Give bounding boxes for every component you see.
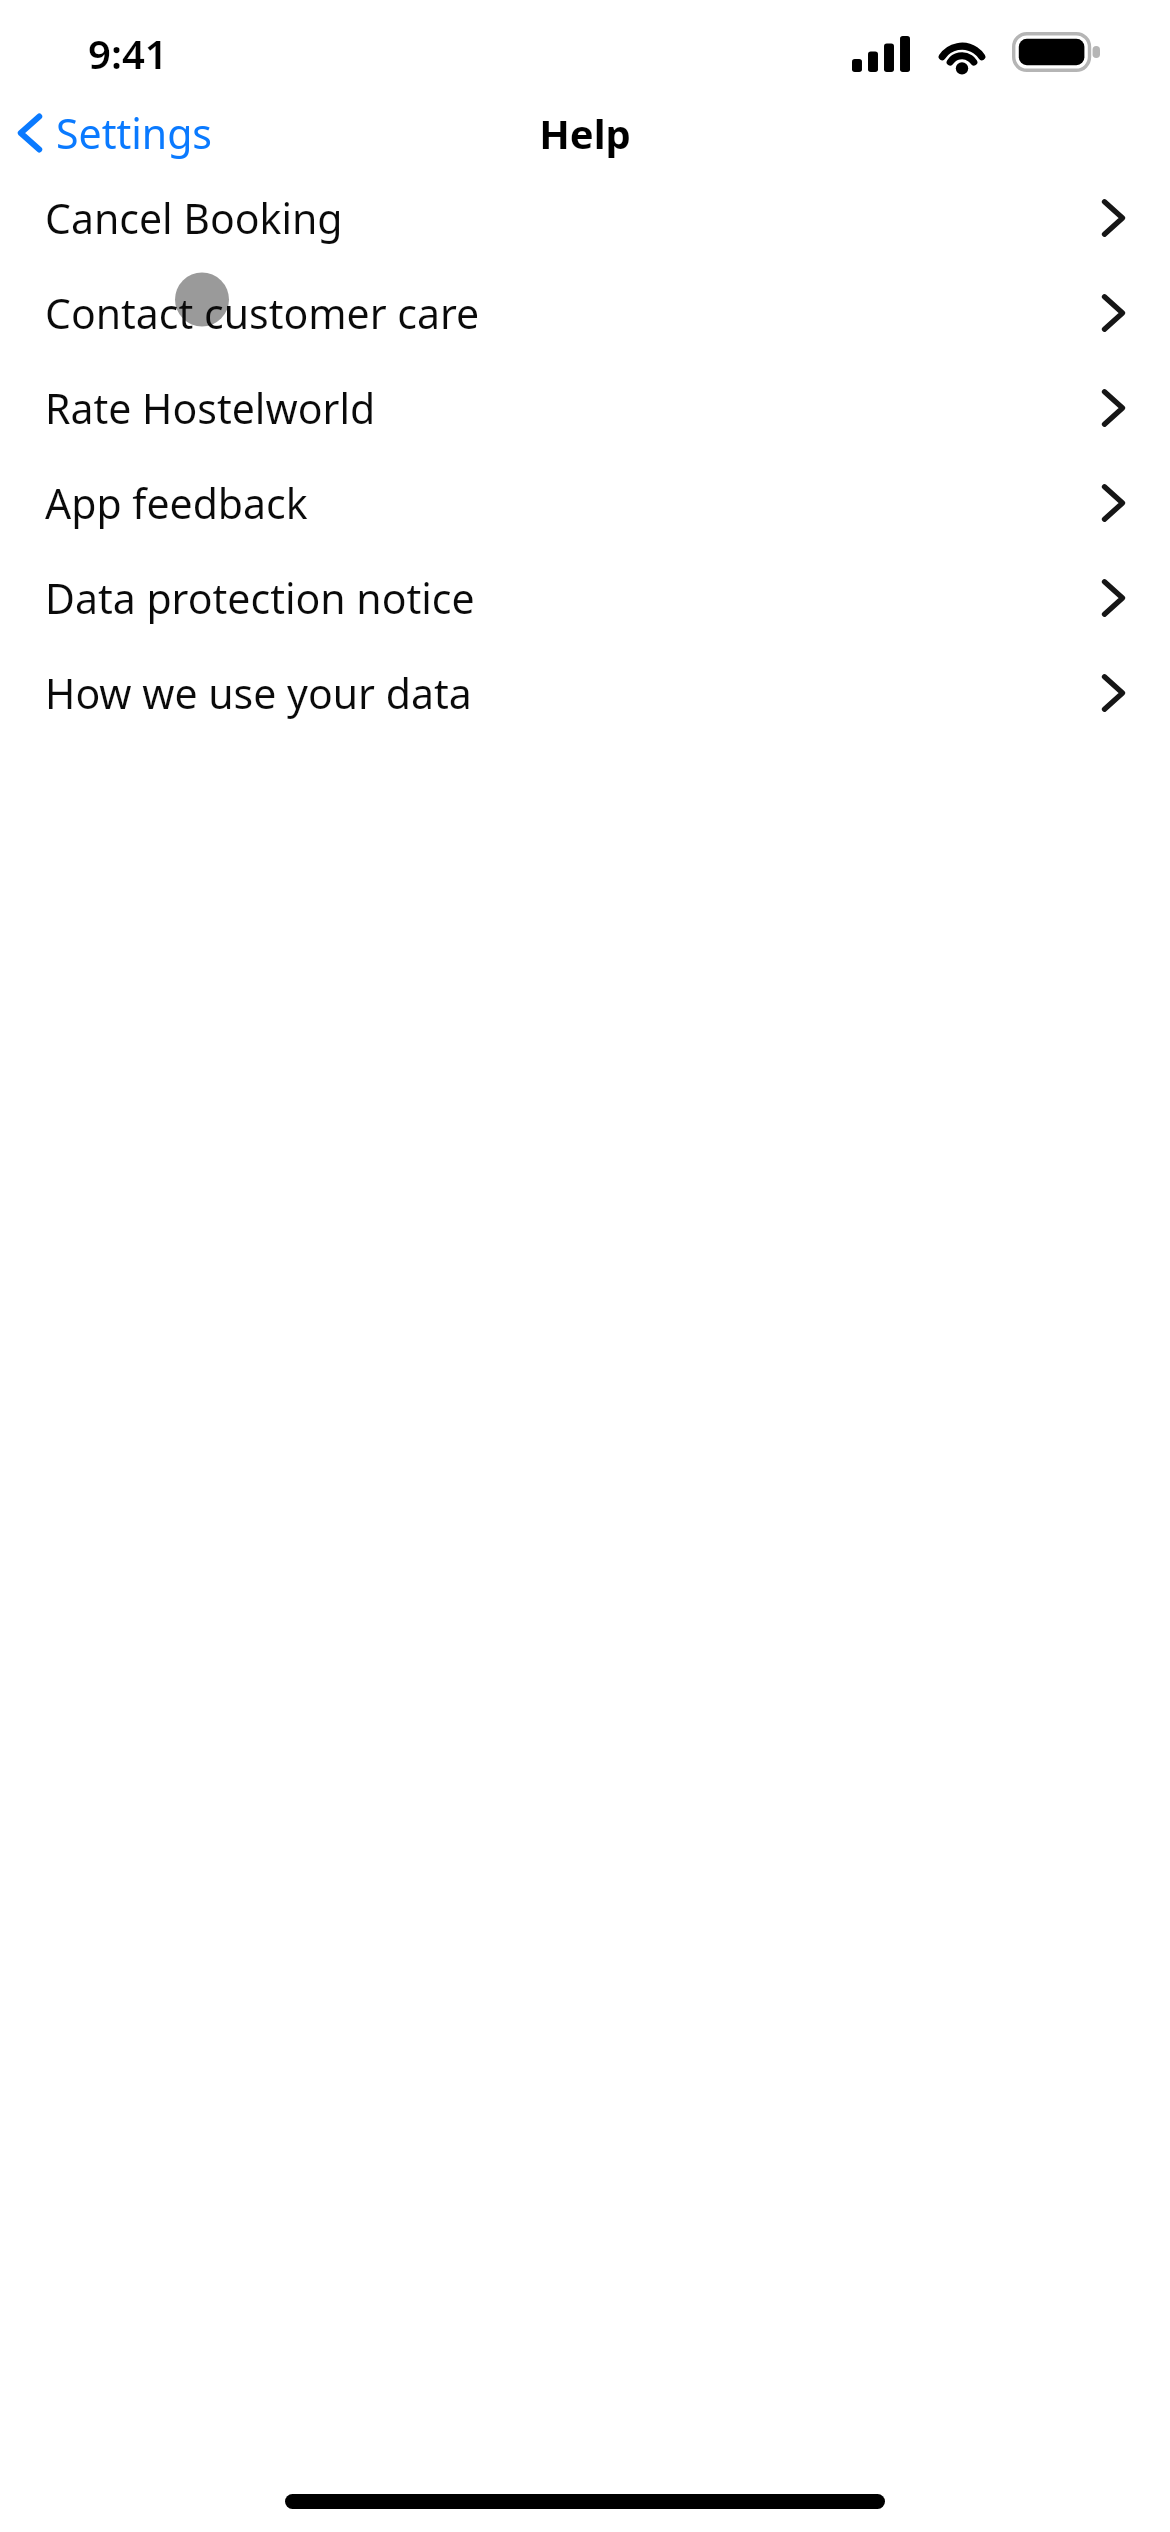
staticText: App feedback	[45, 475, 308, 531]
staticText: Data protection notice	[45, 570, 475, 626]
button[interactable]: Contact customer care	[0, 265, 1170, 360]
button[interactable]: Data protection notice	[0, 550, 1170, 645]
button[interactable]: Back to Settings	[0, 97, 229, 169]
button[interactable]: How we use your data	[0, 645, 1170, 740]
staticText: Contact customer care	[45, 285, 480, 341]
button[interactable]: Rate Hostelworld	[0, 360, 1170, 455]
button[interactable]: Cancel Booking	[0, 170, 1170, 265]
staticText: How we use your data	[45, 665, 472, 721]
button[interactable]: App feedback	[0, 455, 1170, 550]
staticText: Cancel Booking	[45, 190, 343, 246]
staticText: Settings	[56, 105, 213, 161]
staticText: 9:41	[88, 26, 168, 80]
other: Back to Settings	[16, 110, 44, 156]
staticText: Rate Hostelworld	[45, 380, 376, 436]
staticText: Help	[539, 106, 631, 160]
